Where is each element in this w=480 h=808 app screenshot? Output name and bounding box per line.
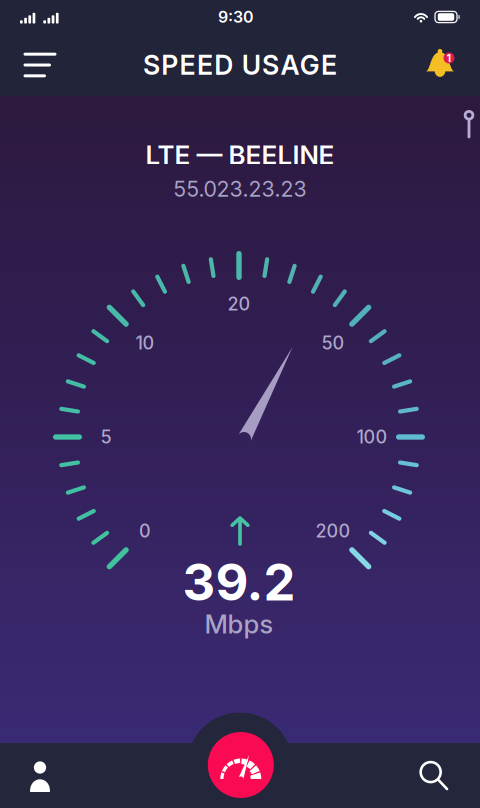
staticText: 39.2 xyxy=(182,551,295,613)
staticText: Mbps xyxy=(204,608,273,640)
staticText: 100 xyxy=(356,426,387,448)
staticText: SPEED USAGE xyxy=(143,49,337,81)
staticText: 20 xyxy=(227,293,250,315)
staticText: 1 xyxy=(446,51,451,64)
button[interactable]: Notifications xyxy=(412,34,470,96)
staticText: 9:30 xyxy=(218,7,254,27)
button[interactable]: Profile xyxy=(0,743,85,808)
staticText: 50 xyxy=(321,332,344,354)
button[interactable]: Search xyxy=(389,743,479,808)
staticText: 5 xyxy=(100,426,111,448)
staticText: 200 xyxy=(315,520,350,542)
staticText: 55.023.23.23 xyxy=(173,176,306,202)
staticText: 10 xyxy=(135,332,154,354)
staticText: LTE — BEELINE xyxy=(145,139,334,171)
button[interactable]: Menu xyxy=(10,34,70,96)
button[interactable]: Location xyxy=(452,104,480,144)
staticText: 0 xyxy=(139,520,151,542)
button[interactable]: Run speed test xyxy=(201,725,281,805)
